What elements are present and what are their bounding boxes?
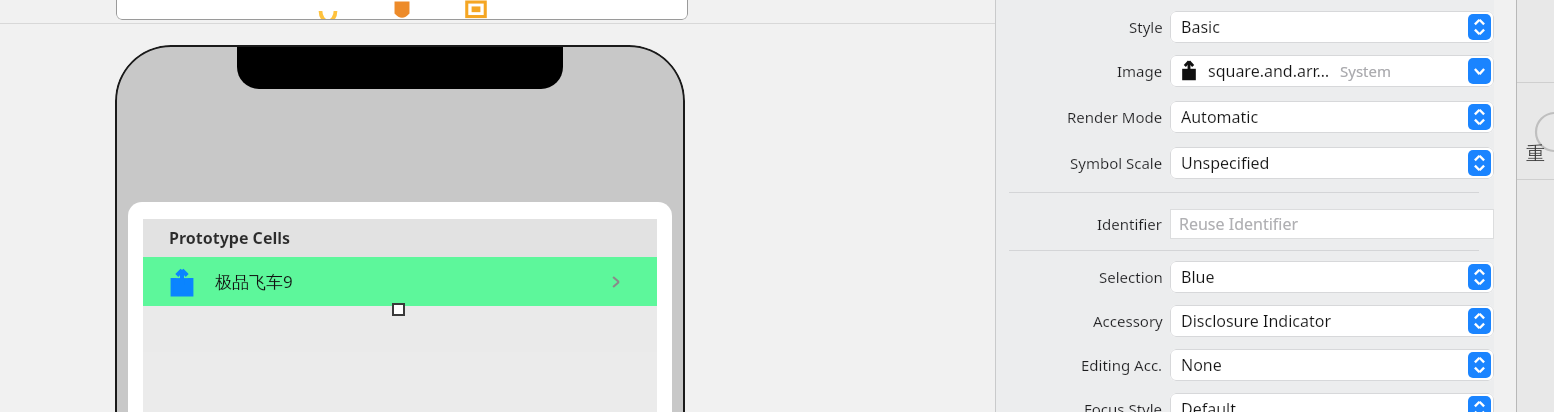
button[interactable]: Change value xyxy=(1468,150,1491,176)
staticText: Identifier xyxy=(1097,214,1163,234)
staticText: Style xyxy=(1129,17,1163,37)
button[interactable]: Change value xyxy=(1468,308,1491,334)
button[interactable]: Reuse Identifier xyxy=(1170,209,1494,239)
button[interactable]: Change value xyxy=(1468,264,1491,290)
button[interactable]: None xyxy=(1170,349,1494,381)
other: Share xyxy=(169,269,195,295)
staticText: Disclosure Indicator xyxy=(1181,310,1331,332)
staticText: Reuse Identifier xyxy=(1179,213,1299,235)
staticText: Automatic xyxy=(1181,106,1259,128)
button[interactable]: Blue xyxy=(1170,261,1494,293)
staticText: Accessory xyxy=(1093,311,1163,331)
staticText: Focus Style xyxy=(1084,399,1163,412)
staticText: Unspecified xyxy=(1181,152,1270,174)
button[interactable]: Change value xyxy=(1468,104,1491,130)
button[interactable]: Change value xyxy=(1468,352,1491,378)
staticText: Editing Acc. xyxy=(1081,355,1163,375)
button[interactable]: Change value xyxy=(1468,14,1491,40)
staticText: Image xyxy=(1117,61,1163,81)
staticText: None xyxy=(1181,354,1222,376)
staticText: 重 xyxy=(1526,142,1545,166)
button[interactable]: Change value xyxy=(1468,396,1491,412)
button[interactable]: Disclosure Indicator xyxy=(1170,305,1494,337)
staticText: square.and.arr… xyxy=(1208,60,1330,82)
button[interactable]: Default xyxy=(1170,393,1494,412)
button[interactable]: Unspecified xyxy=(1170,147,1494,179)
button[interactable]: Share xyxy=(143,257,657,306)
button[interactable]: square.and.arr… xyxy=(1170,55,1494,87)
staticText: Selection xyxy=(1099,267,1163,287)
staticText: Symbol Scale xyxy=(1070,153,1163,173)
staticText: 极品飞车9 xyxy=(215,270,293,293)
staticText: System xyxy=(1340,61,1391,81)
staticText: Blue xyxy=(1181,266,1215,288)
staticText: Basic xyxy=(1181,16,1220,38)
staticText: Prototype Cells xyxy=(169,227,291,249)
button[interactable]: Basic xyxy=(1170,11,1494,43)
staticText: Default xyxy=(1181,398,1236,412)
button[interactable]: Choose image xyxy=(1468,58,1491,84)
button[interactable]: Automatic xyxy=(1170,101,1494,133)
staticText: Render Mode xyxy=(1067,107,1163,127)
